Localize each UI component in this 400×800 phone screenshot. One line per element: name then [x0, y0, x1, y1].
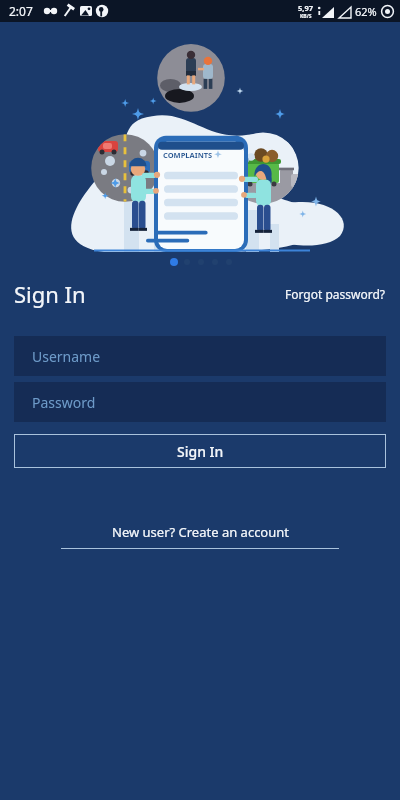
staticText: Password: [32, 393, 96, 412]
button[interactable]: Sign In: [14, 434, 386, 468]
button[interactable]: Username: [14, 336, 386, 376]
button[interactable]: Password: [14, 382, 386, 422]
staticText: COMPLAINTS: [163, 150, 213, 160]
staticText: 62%: [355, 4, 377, 19]
staticText: Forgot password?: [285, 286, 386, 302]
staticText: Username: [32, 347, 101, 366]
staticText: New user? Create an account: [112, 523, 289, 541]
staticText: 5,97: [298, 3, 314, 13]
staticText: Sign In: [14, 279, 86, 309]
button[interactable]: Forgot password?: [281, 282, 390, 306]
staticText: Sign In: [177, 442, 224, 461]
button[interactable]: New user? Create an account: [61, 523, 339, 549]
staticText: KB/S: [300, 13, 312, 20]
staticText: 2:07: [9, 3, 33, 19]
